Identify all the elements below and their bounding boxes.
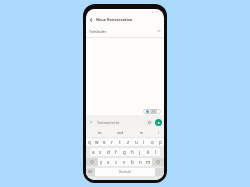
- button[interactable]: SMS: [146, 109, 158, 114]
- button[interactable]: y: [98, 158, 105, 166]
- other: Expand: [89, 120, 93, 124]
- button[interactable]: z: [124, 138, 132, 146]
- button[interactable]: b: [128, 158, 136, 166]
- staticText: e: [103, 139, 106, 145]
- button[interactable]: .: [155, 168, 164, 176]
- staticText: !#1: [88, 170, 93, 174]
- staticText: w: [95, 139, 99, 145]
- button[interactable]: g: [120, 148, 128, 156]
- staticText: y: [100, 159, 103, 165]
- staticText: q: [88, 139, 91, 145]
- staticText: b: [131, 159, 134, 165]
- button[interactable]: c: [112, 158, 120, 166]
- button[interactable]: Backspace: [152, 158, 164, 166]
- staticText: g: [123, 149, 126, 155]
- button[interactable]: v: [120, 158, 128, 166]
- staticText: d: [107, 149, 110, 155]
- button[interactable]: k: [144, 148, 152, 156]
- staticText: z: [127, 139, 130, 145]
- button[interactable]: Send: [155, 119, 162, 126]
- button[interactable]: !#1: [86, 168, 95, 176]
- button[interactable]: e: [100, 138, 108, 146]
- button[interactable]: a: [90, 148, 97, 156]
- staticText: n: [139, 159, 142, 165]
- staticText: r: [111, 139, 113, 145]
- button[interactable]: l: [152, 148, 160, 156]
- staticText: s: [99, 149, 102, 155]
- button[interactable]: und: [110, 127, 131, 137]
- button[interactable]: q: [86, 138, 93, 146]
- button[interactable]: Techläufer: [89, 25, 161, 37]
- staticText: p: [159, 139, 162, 145]
- button[interactable]: f: [112, 148, 120, 156]
- button[interactable]: n: [136, 158, 144, 166]
- button[interactable]: p: [156, 138, 164, 146]
- button[interactable]: ist: [89, 127, 110, 137]
- button[interactable]: Back: [86, 14, 164, 25]
- button[interactable]: o: [148, 138, 156, 146]
- staticText: t: [119, 139, 121, 145]
- staticText: k: [147, 149, 150, 155]
- button[interactable]: Deutsch: [95, 168, 155, 176]
- button[interactable]: x: [105, 158, 112, 166]
- staticText: i: [143, 139, 145, 145]
- staticText: m: [146, 159, 151, 165]
- staticText: f: [115, 149, 117, 155]
- button[interactable]: w: [93, 138, 100, 146]
- button[interactable]: in: [131, 127, 152, 137]
- staticText: Textnachricht: [97, 120, 120, 125]
- staticText: v: [123, 159, 126, 165]
- button[interactable]: h: [128, 148, 136, 156]
- staticText: u: [135, 139, 138, 145]
- staticText: l: [155, 149, 157, 155]
- button[interactable]: Emoji: [147, 120, 152, 125]
- button[interactable]: s: [97, 148, 104, 156]
- staticText: j: [139, 149, 141, 155]
- staticText: c: [115, 159, 118, 165]
- other: Back: [89, 18, 93, 22]
- staticText: und: [117, 130, 124, 135]
- button[interactable]: More: [152, 127, 164, 137]
- button[interactable]: r: [108, 138, 116, 146]
- staticText: .: [159, 170, 160, 175]
- button[interactable]: u: [132, 138, 140, 146]
- staticText: a: [92, 149, 95, 155]
- button[interactable]: Shift: [86, 158, 98, 166]
- button[interactable]: d: [104, 148, 112, 156]
- button[interactable]: j: [136, 148, 144, 156]
- button[interactable]: t: [116, 138, 124, 146]
- staticText: Deutsch: [119, 170, 132, 174]
- staticText: SMS: [150, 109, 158, 114]
- staticText: h: [131, 149, 134, 155]
- staticText: ist: [98, 130, 102, 135]
- button[interactable]: i: [140, 138, 148, 146]
- button[interactable]: m: [144, 158, 152, 166]
- staticText: in: [140, 130, 143, 135]
- staticText: x: [107, 159, 110, 165]
- staticText: Techläufer: [89, 29, 107, 34]
- staticText: o: [151, 139, 154, 145]
- staticText: Neue Konversation: [96, 17, 133, 22]
